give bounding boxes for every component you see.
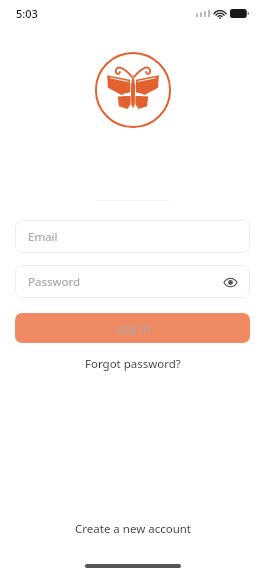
button[interactable]: Log in — [15, 313, 250, 343]
button[interactable]: Create a new account — [65, 517, 201, 541]
staticText: Log in — [115, 320, 151, 336]
staticText: 5:03 — [16, 6, 38, 21]
staticText: Forgot password? — [85, 356, 181, 372]
button[interactable]: Show password — [221, 273, 239, 291]
staticText: Create a new account — [75, 521, 191, 537]
button[interactable]: Password — [15, 265, 250, 298]
staticText: Email — [28, 229, 58, 245]
staticText: Password — [28, 274, 81, 290]
button[interactable]: Forgot password? — [77, 353, 189, 375]
button[interactable]: Email — [15, 220, 250, 253]
